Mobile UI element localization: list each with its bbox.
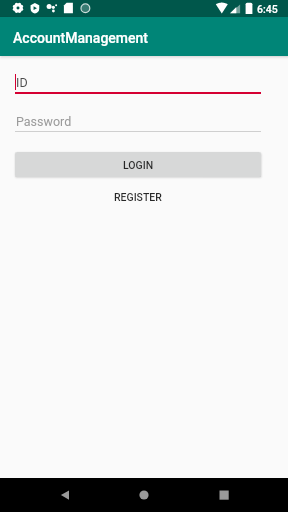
- staticText: REGISTER: [114, 191, 162, 203]
- button[interactable]: Recent apps: [208, 479, 240, 511]
- staticText: ID: [16, 75, 28, 90]
- button[interactable]: Password: [15, 111, 261, 131]
- staticText: AccountManagement: [13, 30, 148, 46]
- staticText: LOGIN: [123, 159, 154, 171]
- button[interactable]: REGISTER: [15, 186, 261, 208]
- button[interactable]: LOGIN: [15, 152, 261, 177]
- staticText: Password: [16, 114, 72, 129]
- staticText: 6:45: [257, 3, 278, 15]
- button[interactable]: Back: [49, 479, 81, 511]
- button[interactable]: Home: [128, 479, 160, 511]
- button[interactable]: ID: [15, 72, 261, 92]
